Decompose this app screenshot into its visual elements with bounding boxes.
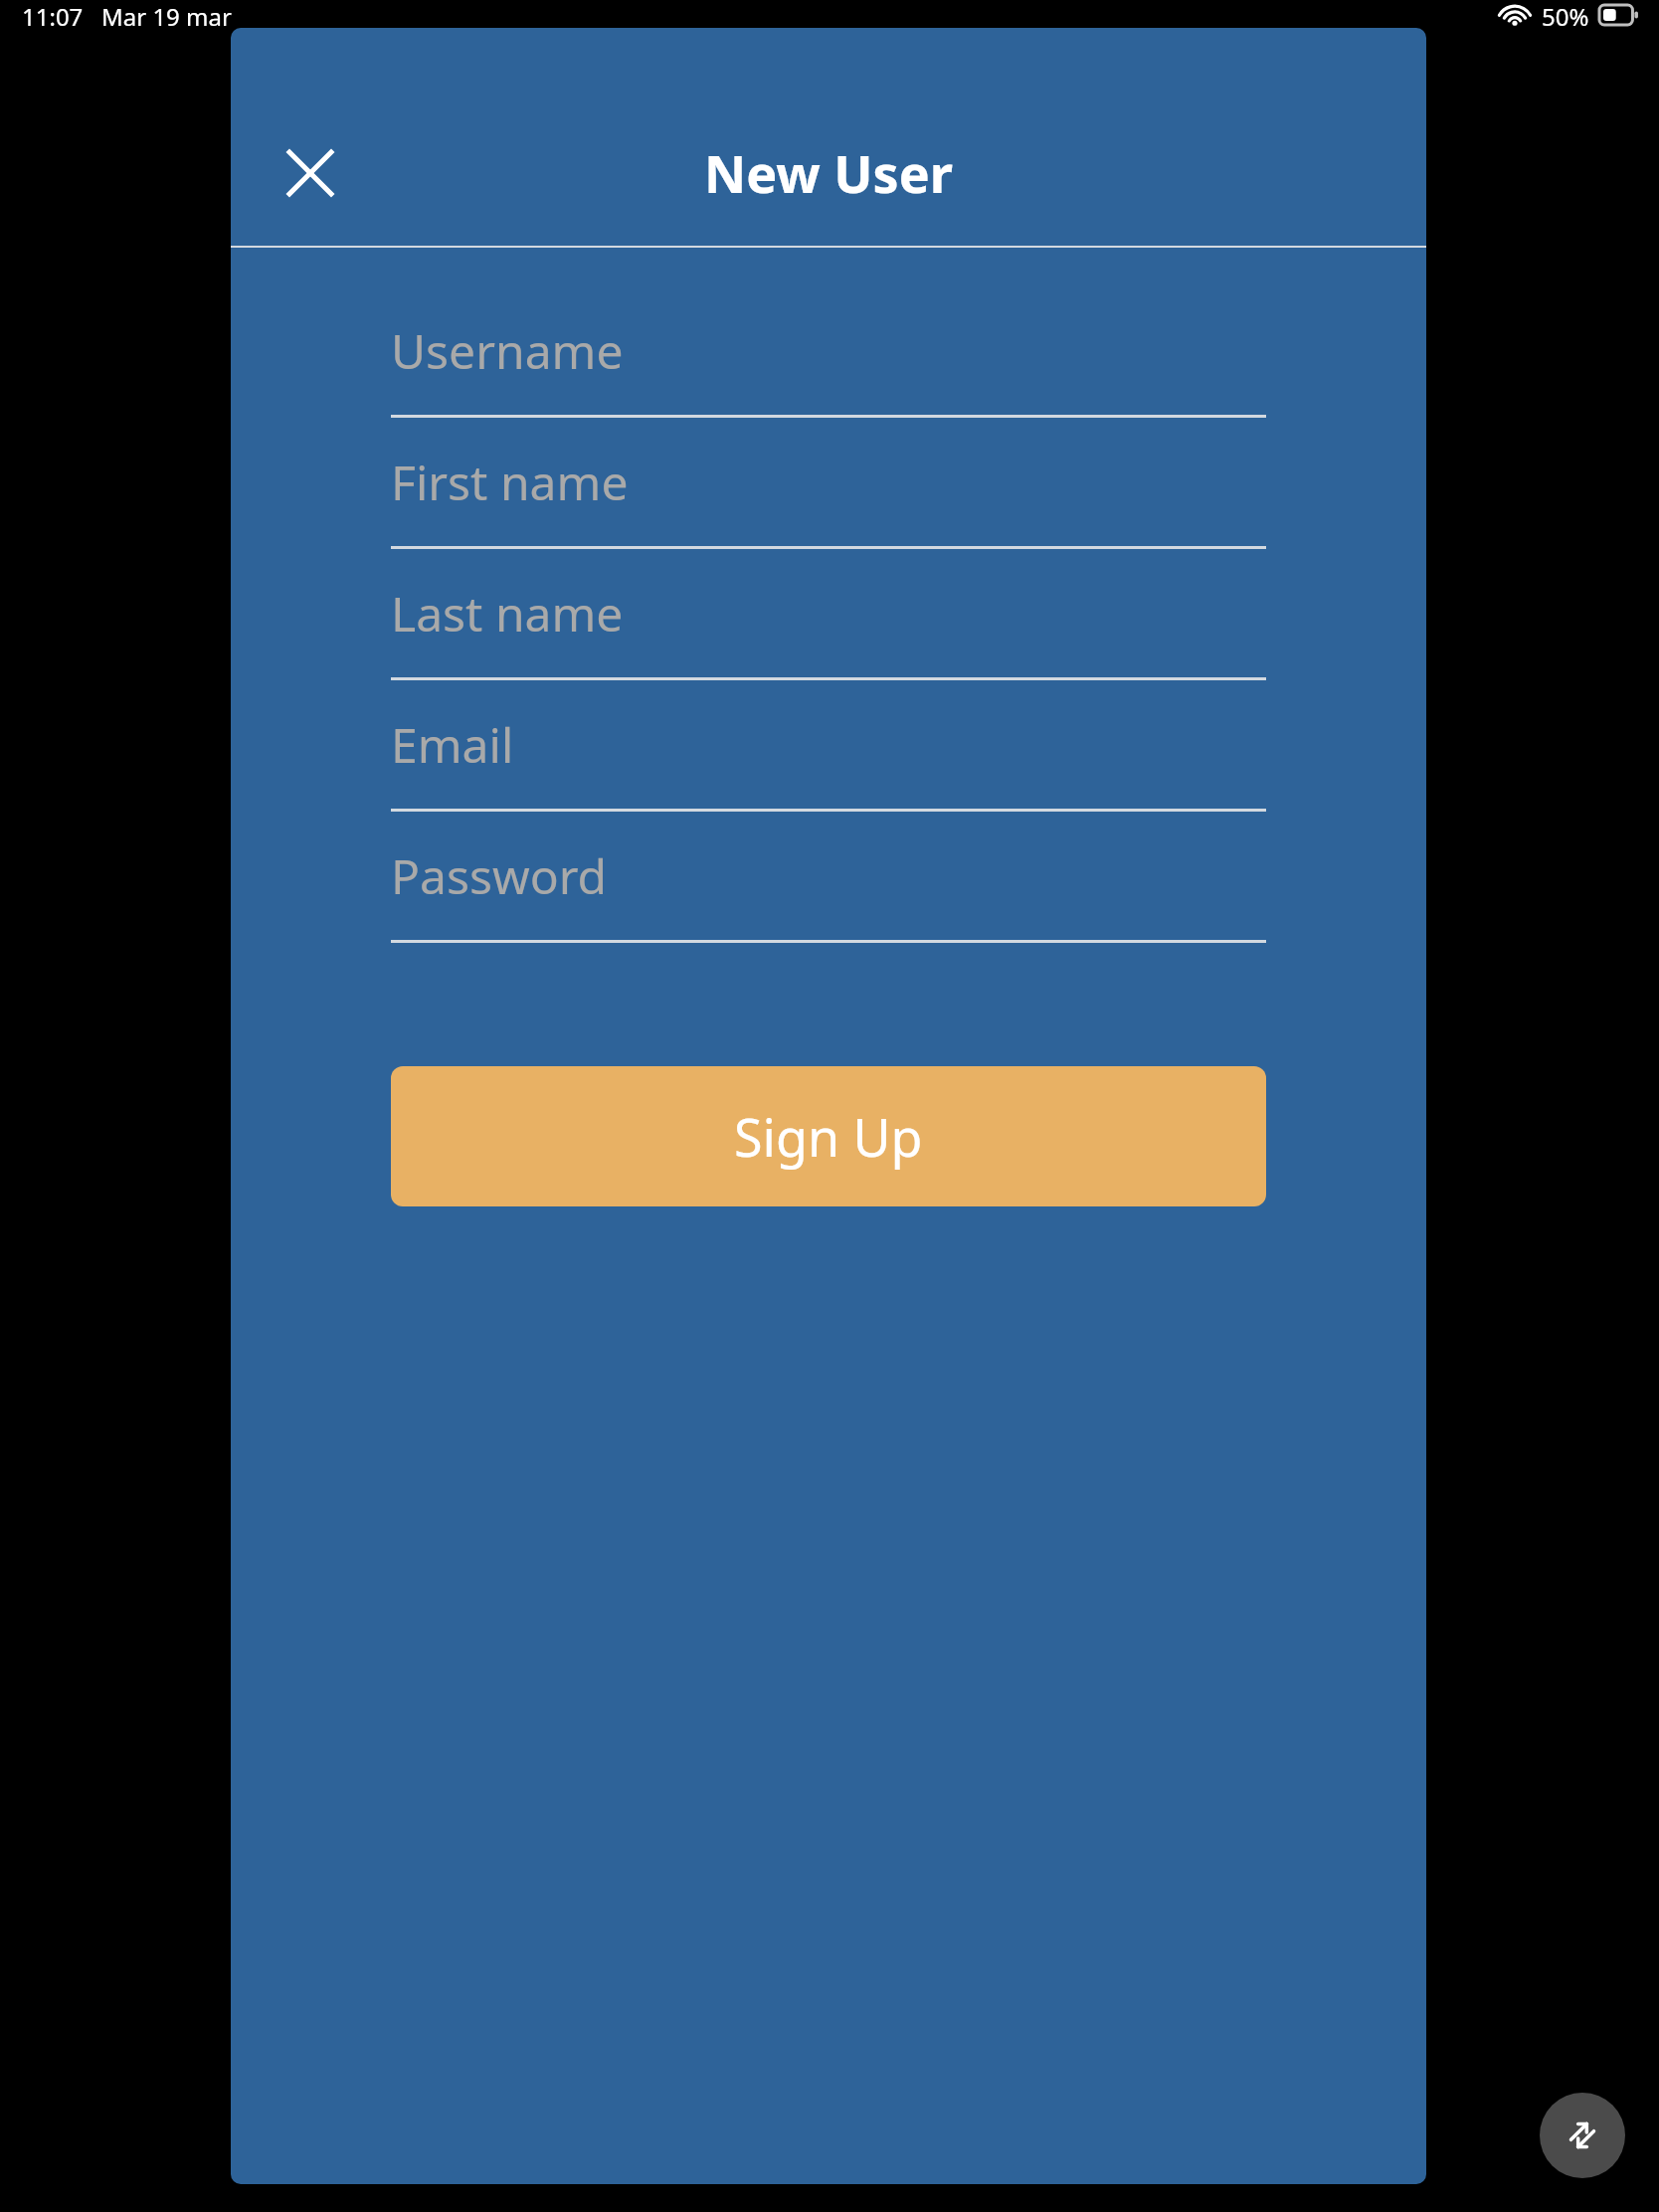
staticText: Username (391, 318, 624, 383)
staticText: Mar 19 mar (101, 0, 232, 30)
staticText: Password (391, 843, 608, 908)
button[interactable]: Email (391, 680, 1266, 812)
staticText: New User (704, 137, 954, 208)
staticText: First name (391, 450, 629, 514)
button[interactable]: Close (273, 135, 348, 211)
button[interactable]: Resize (1540, 2093, 1625, 2178)
button[interactable]: Last name (391, 549, 1266, 680)
staticText: Email (391, 712, 514, 777)
staticText: 11:07 (22, 0, 84, 30)
button[interactable]: Sign Up (391, 1066, 1266, 1206)
staticText: Sign Up (734, 1101, 923, 1172)
button[interactable]: First name (391, 418, 1266, 549)
button[interactable]: Password (391, 812, 1266, 943)
staticText: Last name (391, 581, 624, 645)
button[interactable]: Username (391, 286, 1266, 418)
staticText: 50% (1542, 0, 1589, 30)
